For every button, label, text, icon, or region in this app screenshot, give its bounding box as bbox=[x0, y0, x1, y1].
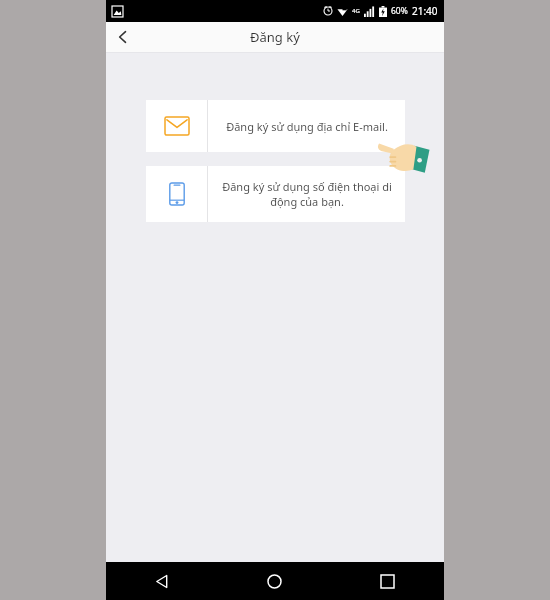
staticText: 21:40 bbox=[412, 4, 438, 18]
staticText: Đăng ký bbox=[250, 28, 300, 46]
button[interactable]: Đăng ký sử dụng địa chỉ E-mail. bbox=[146, 100, 405, 152]
staticText: Đăng ký sử dụng số điện thoại di động củ… bbox=[222, 179, 392, 209]
staticText: Đăng ký sử dụng địa chỉ E-mail. bbox=[226, 119, 388, 134]
button[interactable]: Đăng ký sử dụng số điện thoại di động củ… bbox=[146, 166, 405, 222]
staticText: 60% bbox=[391, 5, 408, 17]
button[interactable]: Home bbox=[218, 562, 331, 600]
button[interactable]: Back bbox=[106, 562, 218, 600]
staticText: 4G bbox=[352, 7, 360, 15]
button[interactable]: Recent apps bbox=[331, 562, 444, 600]
button[interactable]: Back bbox=[106, 22, 140, 52]
